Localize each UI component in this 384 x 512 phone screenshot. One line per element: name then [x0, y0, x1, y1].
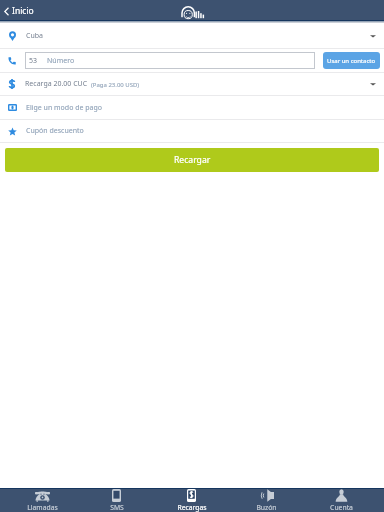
staticText: Cuenta: [330, 503, 353, 512]
staticText: 53: [29, 56, 38, 66]
staticText: Recargas: [177, 503, 207, 512]
other: Expandir: [370, 82, 376, 86]
staticText: Inicio: [12, 5, 34, 17]
staticText: Recargar: [174, 154, 211, 166]
button[interactable]: Llamadas: [5, 489, 79, 512]
button[interactable]: Recarga 20.00 CUC: [0, 73, 384, 95]
staticText: Buzón: [256, 503, 277, 512]
button[interactable]: Inicio: [2, 5, 36, 17]
button[interactable]: Cuba: [0, 23, 384, 48]
other: Expandir: [370, 34, 376, 38]
button[interactable]: 53: [25, 52, 315, 69]
staticText: Cuba: [26, 31, 43, 41]
staticText: Elige un modo de pago: [26, 103, 103, 113]
staticText: Número: [47, 56, 75, 66]
staticText: Recarga 20.00 CUC: [25, 79, 88, 89]
button[interactable]: Elige un modo de pago: [0, 96, 384, 119]
button[interactable]: Recargar: [5, 148, 379, 172]
staticText: Llamadas: [27, 503, 58, 512]
button[interactable]: Buzón: [229, 489, 304, 512]
staticText: Cupón descuento: [26, 126, 84, 136]
staticText: Usar un contacto: [327, 57, 376, 65]
staticText: (Paga 23.00 USD): [91, 81, 140, 89]
button[interactable]: SMS: [79, 489, 154, 512]
staticText: SMS: [110, 503, 124, 512]
button[interactable]: Recargas: [154, 489, 229, 512]
button[interactable]: Cupón descuento: [0, 120, 384, 142]
button[interactable]: Usar un contacto: [323, 52, 380, 69]
button[interactable]: Cuenta: [304, 489, 379, 512]
